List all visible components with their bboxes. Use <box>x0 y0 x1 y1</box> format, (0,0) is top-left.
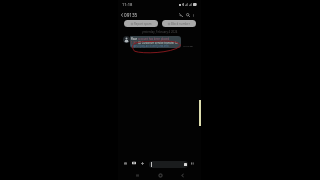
button[interactable]: Your <box>130 36 181 48</box>
button[interactable]: Gallery <box>122 160 128 166</box>
button[interactable]: Stickers <box>149 161 188 168</box>
staticText: Report spam <box>134 22 152 26</box>
button[interactable]: Send <box>189 160 195 166</box>
button[interactable]: More options <box>190 12 196 18</box>
button[interactable]: Stickers <box>184 163 187 166</box>
button[interactable]: Add attachment <box>139 160 145 166</box>
staticText: 11:18 <box>122 2 133 7</box>
button[interactable]: Camera <box>131 160 137 166</box>
staticText: Your <box>131 37 138 41</box>
staticText: yesterday, February 4 2024 <box>142 30 178 34</box>
staticText: 1-87- <box>131 41 138 45</box>
button[interactable]: Block number <box>162 20 196 27</box>
staticText: 42 Customer service transfer to <box>138 41 178 45</box>
staticText: https://pay-acct-verify-nw.info <box>131 44 169 48</box>
staticText: account has been placed <box>138 37 170 41</box>
staticText: Block number <box>171 22 190 26</box>
staticText: 10:18 am <box>183 45 193 48</box>
staticText: 09135 <box>124 12 138 18</box>
button[interactable]: Back <box>178 171 186 179</box>
button[interactable]: Home <box>156 171 164 179</box>
button[interactable]: Call <box>177 11 184 18</box>
button[interactable]: Recent apps <box>133 171 141 179</box>
button[interactable]: Report spam <box>124 20 158 27</box>
button[interactable]: Back <box>118 11 125 18</box>
button[interactable]: Search <box>184 11 191 18</box>
